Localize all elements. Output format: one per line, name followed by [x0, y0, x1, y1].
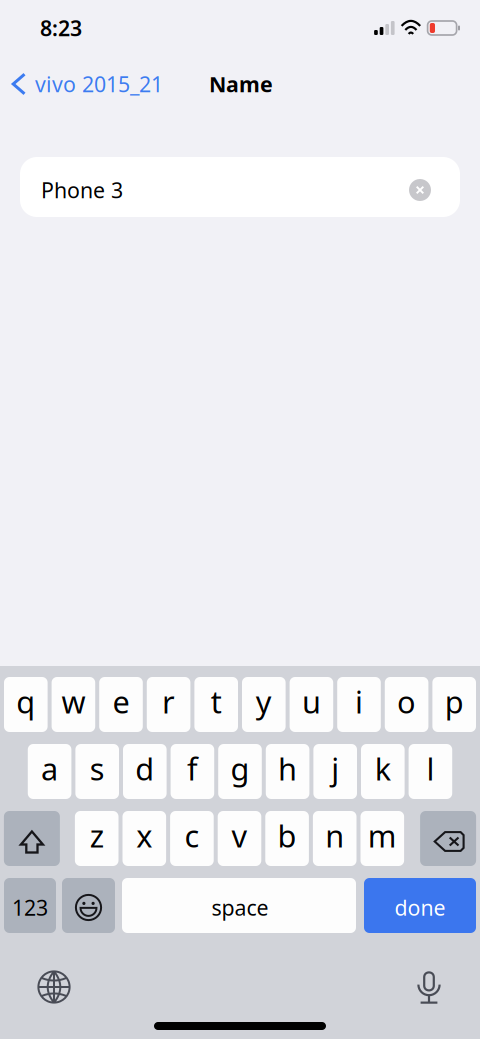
- staticText: Phone 3: [41, 176, 123, 204]
- staticText: k: [375, 748, 391, 789]
- staticText: h: [278, 748, 297, 789]
- button[interactable]: Emoji keyboard: [62, 878, 115, 933]
- staticText: i: [355, 681, 363, 722]
- staticText: z: [90, 815, 104, 856]
- staticText: s: [90, 748, 105, 789]
- staticText: f: [187, 748, 198, 789]
- button[interactable]: vivo 2015_21: [0, 62, 171, 106]
- button[interactable]: Shift: [4, 811, 60, 866]
- button[interactable]: b: [265, 811, 309, 866]
- button[interactable]: done: [364, 878, 476, 933]
- button[interactable]: p: [432, 677, 476, 732]
- staticText: g: [230, 748, 249, 789]
- staticText: p: [445, 681, 464, 722]
- button[interactable]: k: [361, 744, 405, 799]
- button[interactable]: w: [52, 677, 95, 732]
- button[interactable]: z: [75, 811, 118, 866]
- staticText: 8:23: [40, 14, 82, 42]
- staticText: c: [184, 815, 199, 856]
- staticText: b: [278, 815, 297, 856]
- staticText: x: [136, 815, 152, 856]
- button[interactable]: u: [290, 677, 333, 732]
- button[interactable]: m: [360, 811, 404, 866]
- button[interactable]: c: [170, 811, 214, 866]
- staticText: v: [231, 815, 247, 856]
- staticText: a: [41, 748, 58, 789]
- button[interactable]: s: [75, 744, 119, 799]
- button[interactable]: e: [99, 677, 143, 732]
- staticText: l: [426, 748, 434, 789]
- staticText: q: [16, 681, 35, 722]
- button[interactable]: 123: [4, 878, 56, 933]
- button[interactable]: l: [409, 744, 452, 799]
- staticText: r: [162, 681, 175, 722]
- button[interactable]: o: [385, 677, 428, 732]
- button[interactable]: i: [337, 677, 381, 732]
- staticText: o: [397, 681, 416, 722]
- button[interactable]: space: [122, 878, 356, 933]
- staticText: u: [302, 681, 321, 722]
- button[interactable]: h: [266, 744, 309, 799]
- button[interactable]: f: [171, 744, 214, 799]
- button[interactable]: g: [218, 744, 262, 799]
- staticText: space: [211, 893, 268, 922]
- staticText: w: [61, 681, 85, 722]
- button[interactable]: x: [122, 811, 166, 866]
- staticText: Name: [209, 70, 273, 98]
- button[interactable]: Dictation: [407, 965, 451, 1009]
- button[interactable]: Clear text: [405, 175, 435, 205]
- button[interactable]: v: [218, 811, 261, 866]
- button[interactable]: n: [313, 811, 356, 866]
- button[interactable]: j: [313, 744, 357, 799]
- button[interactable]: a: [28, 744, 71, 799]
- button[interactable]: r: [147, 677, 190, 732]
- staticText: y: [256, 681, 272, 722]
- staticText: j: [331, 748, 339, 789]
- button[interactable]: Phone 3: [20, 157, 460, 217]
- staticText: e: [112, 681, 129, 722]
- button[interactable]: t: [194, 677, 238, 732]
- button[interactable]: y: [242, 677, 286, 732]
- staticText: n: [325, 815, 344, 856]
- button[interactable]: q: [4, 677, 48, 732]
- staticText: done: [394, 893, 445, 922]
- staticText: vivo 2015_21: [35, 70, 163, 98]
- staticText: 123: [12, 893, 48, 922]
- staticText: m: [368, 815, 397, 856]
- button[interactable]: Next keyboard: [32, 965, 76, 1009]
- staticText: d: [135, 748, 154, 789]
- button[interactable]: Delete: [420, 811, 476, 866]
- button[interactable]: d: [123, 744, 167, 799]
- staticText: t: [211, 681, 222, 722]
